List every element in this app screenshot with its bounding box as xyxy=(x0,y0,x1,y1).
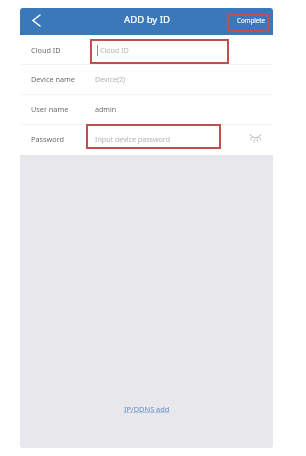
staticText: Cloud ID xyxy=(100,45,129,55)
button[interactable]: Device name xyxy=(20,64,273,94)
button[interactable]: Complete xyxy=(227,14,269,32)
button[interactable]: Back xyxy=(20,8,48,35)
button[interactable]: Cloud ID xyxy=(20,35,273,65)
staticText: Complete xyxy=(237,16,266,24)
button[interactable]: Password xyxy=(20,124,241,154)
staticText: Device name xyxy=(31,74,75,84)
staticText: ADD by ID xyxy=(124,13,170,26)
staticText: IP/DDNS add xyxy=(124,404,170,414)
staticText: User name xyxy=(31,104,69,114)
staticText: Input device password xyxy=(95,134,171,144)
button[interactable]: User name xyxy=(20,94,273,124)
staticText: admin xyxy=(95,104,117,114)
button[interactable]: IP/DDNS add xyxy=(121,402,173,416)
staticText: Password xyxy=(31,134,65,144)
staticText: Device(2) xyxy=(95,74,126,84)
staticText: Cloud ID xyxy=(31,45,61,55)
button[interactable]: Show password xyxy=(241,124,273,154)
